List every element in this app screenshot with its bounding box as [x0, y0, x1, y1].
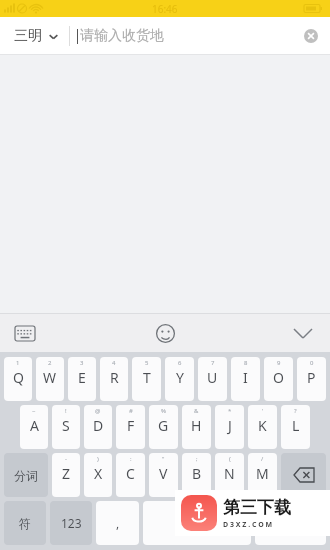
staticText: &: [194, 407, 199, 415]
button[interactable]: Keyboard layout: [10, 318, 40, 348]
staticText: M: [256, 464, 269, 483]
button[interactable]: /: [248, 453, 277, 497]
staticText: J: [228, 416, 232, 435]
button[interactable]: 7: [198, 357, 227, 401]
staticText: ,: [116, 515, 120, 531]
staticText: K: [258, 416, 267, 435]
staticText: 0: [310, 359, 314, 367]
staticText: 分词: [14, 468, 38, 483]
staticText: H: [191, 416, 202, 435]
button[interactable]: 3: [68, 357, 96, 401]
button[interactable]: 符: [4, 501, 46, 545]
staticText: /: [261, 455, 264, 463]
button[interactable]: *: [215, 405, 244, 449]
button[interactable]: Clear: [292, 17, 330, 55]
staticText: P: [307, 368, 316, 387]
button[interactable]: 9: [264, 357, 293, 401]
button[interactable]: -: [52, 453, 80, 497]
staticText: :: [130, 455, 132, 463]
staticText: N: [224, 464, 235, 483]
button[interactable]: ,: [96, 501, 139, 545]
button[interactable]: [255, 501, 326, 545]
staticText: U: [207, 368, 218, 387]
button[interactable]: Emoji: [150, 318, 180, 348]
staticText: D 3 X Z . C O M: [223, 520, 273, 530]
button[interactable]: ": [149, 453, 178, 497]
staticText: G: [158, 416, 169, 435]
staticText: V: [159, 464, 168, 483]
staticText: 三明: [14, 27, 42, 45]
button[interactable]: @: [84, 405, 112, 449]
button[interactable]: ': [248, 405, 277, 449]
button[interactable]: 1: [4, 357, 32, 401]
button[interactable]: #: [116, 405, 145, 449]
staticText: 8: [244, 359, 248, 367]
staticText: 7: [211, 359, 215, 367]
button[interactable]: 8: [231, 357, 260, 401]
button[interactable]: &: [182, 405, 211, 449]
button[interactable]: :: [116, 453, 145, 497]
staticText: %: [161, 407, 166, 415]
staticText: E: [78, 368, 86, 387]
staticText: S: [62, 416, 70, 435]
staticText: 123: [61, 515, 82, 531]
staticText: F: [127, 416, 135, 435]
staticText: C: [126, 464, 135, 483]
button[interactable]: 分词: [4, 453, 48, 497]
button[interactable]: Backspace: [281, 453, 326, 497]
staticText: B: [192, 464, 202, 483]
staticText: I: [243, 368, 248, 387]
staticText: ": [162, 455, 165, 463]
staticText: 3: [80, 359, 84, 367]
button[interactable]: 5: [132, 357, 161, 401]
staticText: #: [129, 407, 133, 415]
staticText: 4: [112, 359, 116, 367]
staticText: !: [65, 407, 67, 415]
button[interactable]: (: [215, 453, 244, 497]
button[interactable]: Voice input: [143, 501, 251, 545]
staticText: -: [65, 455, 67, 463]
staticText: @: [95, 407, 101, 415]
staticText: 2: [48, 359, 52, 367]
staticText: W: [43, 368, 57, 387]
button[interactable]: 三明: [0, 17, 69, 55]
staticText: 9: [277, 359, 281, 367]
button[interactable]: ): [84, 453, 112, 497]
button[interactable]: ~: [20, 405, 48, 449]
button[interactable]: 6: [165, 357, 194, 401]
staticText: A: [30, 416, 39, 435]
staticText: 1: [16, 359, 20, 367]
button[interactable]: !: [52, 405, 80, 449]
staticText: 请输入收货地: [80, 27, 292, 45]
staticText: R: [110, 368, 119, 387]
staticText: *: [228, 407, 232, 415]
button[interactable]: 123: [50, 501, 92, 545]
staticText: Y: [176, 368, 184, 387]
staticText: D: [93, 416, 104, 435]
staticText: O: [273, 368, 284, 387]
staticText: 16:46: [152, 2, 178, 16]
staticText: Z: [62, 464, 71, 483]
staticText: 5: [145, 359, 149, 367]
staticText: ;: [196, 455, 198, 463]
button[interactable]: 4: [100, 357, 128, 401]
button[interactable]: %: [149, 405, 178, 449]
button[interactable]: ?: [281, 405, 310, 449]
staticText: ): [97, 455, 99, 463]
staticText: 第三下载: [223, 497, 291, 518]
button[interactable]: 0: [297, 357, 326, 401]
staticText: X: [94, 464, 103, 483]
button[interactable]: 2: [36, 357, 64, 401]
staticText: (: [229, 455, 231, 463]
staticText: ?: [294, 407, 297, 415]
button[interactable]: Hide keyboard: [288, 318, 318, 348]
staticText: L: [292, 416, 300, 435]
button[interactable]: ;: [182, 453, 211, 497]
staticText: ': [262, 407, 264, 415]
staticText: 符: [19, 516, 31, 531]
staticText: ~: [32, 407, 36, 415]
staticText: T: [143, 368, 151, 387]
staticText: 6: [178, 359, 182, 367]
staticText: Q: [13, 368, 24, 387]
